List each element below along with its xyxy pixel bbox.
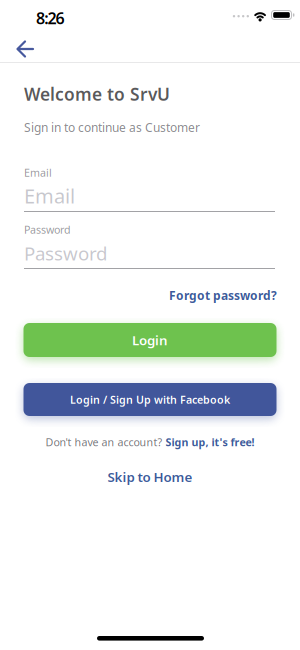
button[interactable] [12, 34, 42, 64]
staticText: Welcome to SrvU [24, 82, 170, 105]
staticText: Forgot password? [169, 287, 277, 303]
button[interactable]: Login / Sign Up with Facebook [23, 383, 276, 416]
staticText: Password [24, 241, 107, 266]
staticText: 8:26 [36, 7, 65, 29]
button[interactable]: Forgot password? [169, 287, 277, 303]
staticText: Don't have an account? [45, 435, 162, 449]
staticText: Skip to Home [107, 468, 192, 486]
staticText: Password [24, 222, 71, 237]
staticText: Email [24, 182, 75, 209]
staticText: Sign in to continue as Customer [24, 119, 200, 135]
button[interactable]: Login [23, 323, 276, 357]
button[interactable]: Skip to Home [107, 468, 192, 486]
staticText: Email [24, 165, 52, 180]
staticText: Sign up, it's free! [165, 435, 254, 449]
button[interactable]: Don't have an account? [45, 435, 254, 449]
staticText: Login / Sign Up with Facebook [70, 392, 230, 407]
staticText: Login [132, 331, 168, 349]
